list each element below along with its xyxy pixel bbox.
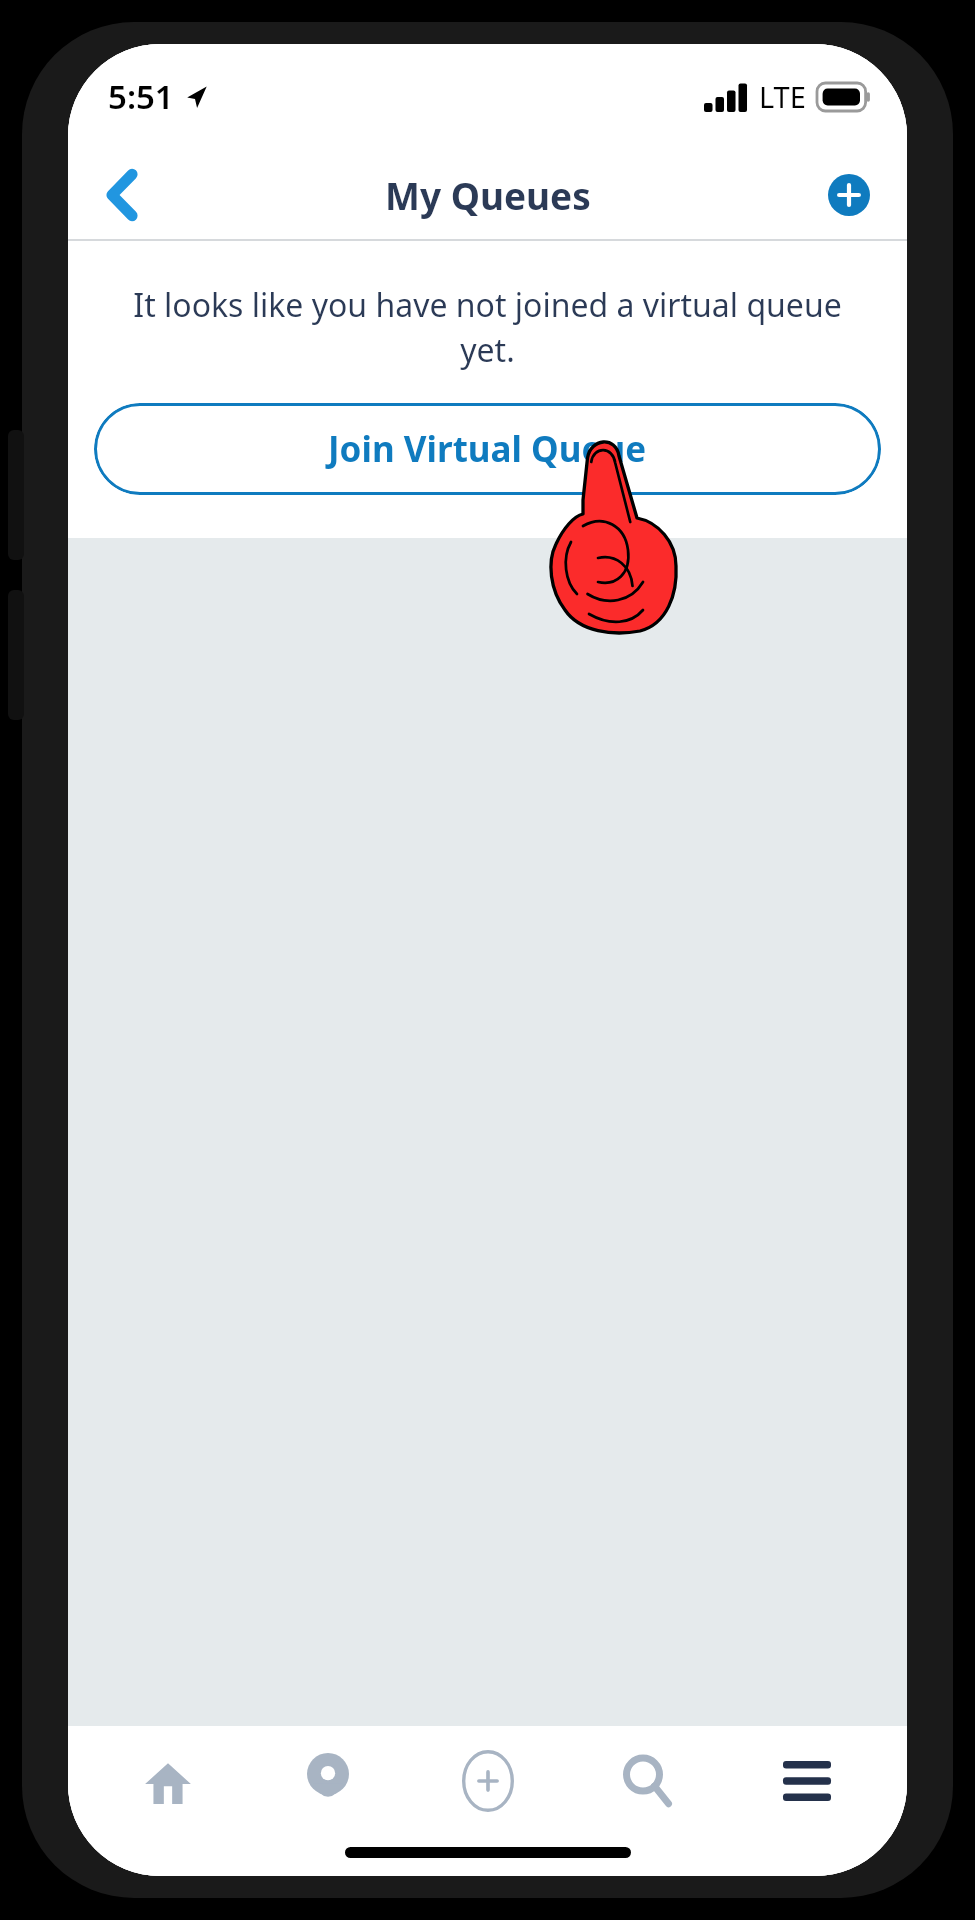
button[interactable]: Menu: [747, 1726, 867, 1836]
staticText: My Queues: [385, 170, 591, 220]
button[interactable]: Join Virtual Queue: [94, 403, 881, 495]
button[interactable]: Back: [84, 157, 160, 233]
staticText: Join Virtual Queue: [328, 425, 647, 473]
staticText: It looks like you have not joined a virt…: [120, 283, 855, 371]
button[interactable]: Create: [428, 1726, 548, 1836]
button[interactable]: Search: [587, 1726, 707, 1836]
button[interactable]: Home: [108, 1726, 228, 1836]
button[interactable]: Add queue: [811, 157, 887, 233]
staticText: LTE: [759, 77, 806, 116]
button[interactable]: Map: [268, 1726, 388, 1836]
staticText: 5:51: [108, 74, 174, 119]
